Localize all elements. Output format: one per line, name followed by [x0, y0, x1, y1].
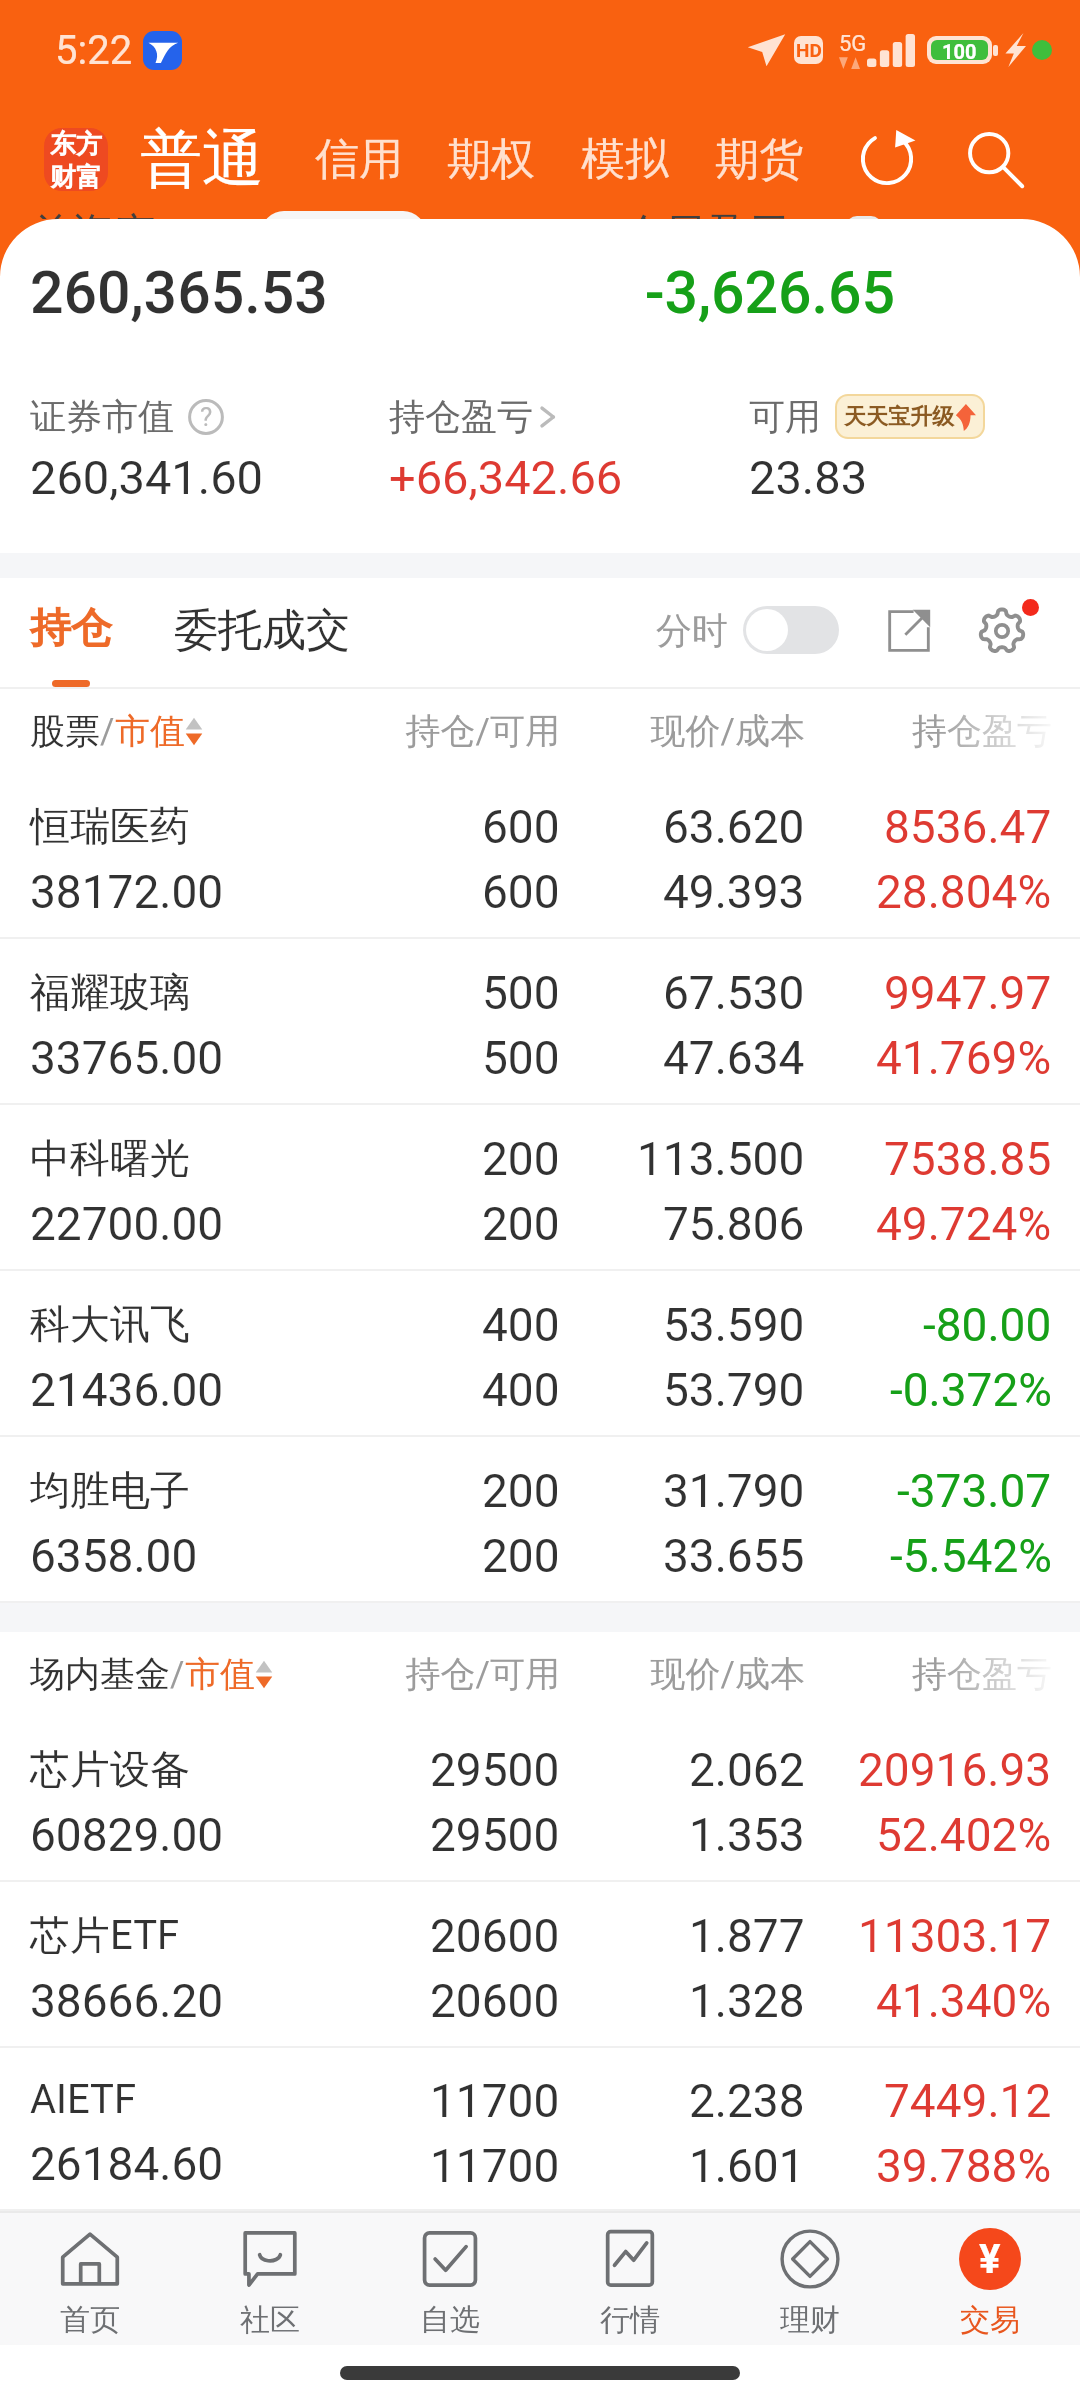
staticText: 普通 — [140, 120, 264, 198]
button[interactable]: 芯片ETF — [0, 1882, 1080, 2048]
staticText: 7538.85 — [884, 1132, 1052, 1186]
staticText: 9947.97 — [884, 966, 1052, 1020]
staticText: 29500 — [430, 1808, 560, 1862]
staticText: 现价/成本 — [560, 709, 805, 753]
button[interactable]: 首页 — [0, 2213, 180, 2345]
staticText: 行情 — [600, 2301, 660, 2339]
staticText: 53.790 — [663, 1363, 805, 1417]
button[interactable]: 设置 — [969, 600, 1035, 666]
staticText: AIETF — [30, 2076, 137, 2123]
button[interactable]: 东方财富 — [44, 128, 108, 191]
staticText: 500 — [482, 966, 560, 1020]
staticText: 41.340% — [876, 1974, 1052, 2028]
staticText: -3,626.65 — [645, 258, 896, 327]
staticText: 38666.20 — [30, 1974, 224, 2028]
button[interactable]: 分享 — [877, 601, 941, 665]
staticText: HD — [796, 39, 822, 61]
staticText: 7449.12 — [884, 2074, 1052, 2128]
staticText: 26184.60 — [30, 2137, 224, 2191]
staticText: 39.788% — [876, 2139, 1052, 2193]
staticText: 38172.00 — [30, 865, 224, 919]
button[interactable]: AIETF — [0, 2048, 1080, 2211]
staticText: 委托成交 — [174, 603, 350, 658]
button[interactable]: 委托成交 — [174, 603, 350, 663]
staticText: 63.620 — [663, 800, 805, 854]
button[interactable]: 模拟 — [581, 132, 669, 187]
button[interactable]: 均胜电子 — [0, 1437, 1080, 1603]
staticText: 现价/成本 — [560, 1652, 805, 1696]
staticText: 场内基金 — [30, 1652, 170, 1696]
staticText: 5G — [839, 31, 867, 57]
staticText: 49.393 — [663, 865, 805, 919]
staticText: 模拟 — [581, 132, 669, 187]
staticText: 100 — [942, 40, 977, 60]
button[interactable]: 期货 — [715, 132, 803, 187]
staticText: 期权 — [447, 132, 535, 187]
staticText: 1.877 — [689, 1909, 805, 1963]
staticText: 11303.17 — [858, 1909, 1052, 1963]
staticText: 41.769% — [876, 1031, 1052, 1085]
staticText: 市值 — [115, 709, 185, 753]
staticText: 可用 — [749, 394, 821, 439]
staticText: 天天宝升级 — [844, 403, 954, 431]
button[interactable]: 说明 — [188, 399, 224, 435]
staticText: 总资产 — [30, 208, 156, 219]
staticText: 29500 — [430, 1743, 560, 1797]
staticText: 1.601 — [689, 2139, 805, 2193]
staticText: 恒瑞医药 — [30, 801, 190, 851]
staticText: 持仓/可用 — [310, 709, 560, 753]
button[interactable]: 搜索 — [957, 121, 1033, 197]
staticText: 23.83 — [749, 450, 868, 505]
staticText: 600 — [482, 865, 560, 919]
staticText: 持仓/可用 — [310, 1652, 560, 1696]
staticText: 5:22 — [55, 27, 133, 74]
staticText: 期货 — [715, 132, 803, 187]
staticText: 260,341.60 — [30, 450, 263, 505]
button[interactable]: 理财 — [720, 2213, 900, 2345]
staticText: 20916.93 — [858, 1743, 1052, 1797]
staticText: 6358.00 — [30, 1529, 198, 1583]
button[interactable]: 福耀玻璃 — [0, 939, 1080, 1105]
button[interactable]: 分时 — [656, 606, 839, 659]
staticText: 60829.00 — [30, 1808, 224, 1862]
button[interactable]: 天天宝升级 — [835, 394, 985, 439]
staticText: 400 — [482, 1298, 560, 1352]
staticText: 8536.47 — [884, 800, 1052, 854]
staticText: 47.634 — [663, 1031, 805, 1085]
button[interactable]: 普通 — [140, 120, 264, 198]
button[interactable]: 行情 — [540, 2213, 720, 2345]
button[interactable]: ¥ — [900, 2213, 1080, 2345]
staticText: -373.07 — [897, 1464, 1052, 1518]
button[interactable]: 期权 — [447, 132, 535, 187]
staticText: 分时 — [656, 608, 728, 653]
button[interactable]: 刷新 — [849, 121, 925, 197]
staticText: 交易 — [960, 2301, 1020, 2339]
staticText: +66,342.66 — [389, 450, 623, 505]
staticText: 市值 — [185, 1652, 255, 1696]
staticText: 260,365.53 — [30, 258, 328, 327]
button[interactable]: 信用 — [315, 132, 403, 187]
button[interactable]: 芯片设备 — [0, 1716, 1080, 1882]
button[interactable]: 持仓 — [30, 578, 112, 687]
staticText: 75.806 — [663, 1197, 805, 1251]
staticText: 芯片设备 — [30, 1744, 190, 1794]
staticText: ¥ — [979, 2236, 1001, 2283]
staticText: 持仓 — [30, 603, 112, 655]
button[interactable]: 社区 — [180, 2213, 360, 2345]
staticText: / — [170, 1654, 185, 1695]
staticText: 200 — [482, 1132, 560, 1186]
staticText: 33765.00 — [30, 1031, 224, 1085]
staticText: 财富 — [50, 161, 102, 191]
staticText: 600 — [482, 800, 560, 854]
button[interactable]: 科大讯飞 — [0, 1271, 1080, 1437]
staticText: ? — [200, 402, 213, 432]
button[interactable]: 恒瑞医药 — [0, 773, 1080, 939]
button[interactable]: 自选 — [360, 2213, 540, 2345]
staticText: 理财 — [780, 2301, 840, 2339]
button[interactable]: 中科曙光 — [0, 1105, 1080, 1271]
staticText: 28.804% — [876, 865, 1052, 919]
staticText: 均胜电子 — [30, 1465, 190, 1515]
staticText: 11700 — [430, 2139, 560, 2193]
staticText: 福耀玻璃 — [30, 967, 190, 1017]
staticText: -80.00 — [923, 1298, 1052, 1352]
